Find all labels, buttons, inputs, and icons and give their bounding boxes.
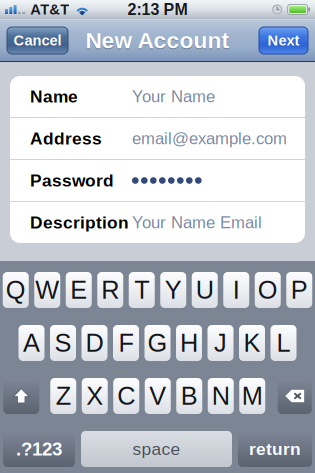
staticText: G — [147, 329, 167, 357]
staticText: Next — [267, 32, 299, 49]
staticText: D — [85, 329, 103, 357]
staticText: B — [181, 382, 198, 410]
button[interactable]: C — [113, 378, 139, 414]
staticText: N — [212, 382, 230, 410]
staticText: S — [54, 329, 71, 357]
button[interactable]: .?123 — [3, 431, 75, 467]
staticText: H — [180, 329, 198, 357]
button[interactable]: T — [129, 272, 155, 308]
staticText: W — [35, 276, 59, 304]
button[interactable]: G — [144, 325, 170, 361]
staticText: Cancel — [13, 32, 61, 49]
staticText: J — [214, 329, 227, 357]
button[interactable]: U — [192, 272, 218, 308]
staticText: Description — [30, 213, 129, 232]
staticText: email@example.com — [132, 129, 287, 148]
button[interactable]: Delete — [278, 378, 312, 414]
button[interactable]: L — [270, 325, 296, 361]
button[interactable]: return — [238, 431, 312, 467]
staticText: return — [249, 439, 301, 459]
staticText: R — [101, 276, 119, 304]
staticText: I — [233, 276, 240, 304]
button[interactable]: V — [145, 378, 171, 414]
button[interactable]: M — [239, 378, 265, 414]
staticText: space — [132, 439, 180, 459]
staticText: Name — [30, 87, 78, 106]
button[interactable]: X — [82, 378, 108, 414]
staticText: V — [149, 382, 166, 410]
staticText: P — [291, 276, 308, 304]
staticText: X — [86, 382, 103, 410]
staticText: Z — [56, 382, 71, 410]
button[interactable]: Q — [3, 272, 29, 308]
staticText: A — [23, 329, 40, 357]
staticText: F — [118, 329, 133, 357]
button[interactable]: N — [208, 378, 234, 414]
button[interactable]: D — [81, 325, 107, 361]
button[interactable]: F — [113, 325, 139, 361]
button[interactable]: I — [223, 272, 249, 308]
button[interactable]: S — [50, 325, 76, 361]
staticText: T — [134, 276, 149, 304]
staticText: U — [196, 276, 214, 304]
staticText: K — [243, 329, 260, 357]
staticText: Y — [165, 276, 182, 304]
button[interactable]: R — [97, 272, 123, 308]
staticText: O — [258, 276, 278, 304]
staticText: Address — [30, 129, 102, 148]
staticText: New Account — [85, 28, 229, 53]
staticText: AT&T — [30, 1, 69, 18]
button[interactable]: Z — [50, 378, 76, 414]
button[interactable]: O — [255, 272, 281, 308]
staticText: M — [242, 382, 263, 410]
button[interactable]: Cancel — [7, 27, 68, 54]
staticText: New Account — [85, 29, 229, 54]
staticText: Password — [30, 171, 114, 190]
staticText: L — [276, 329, 290, 357]
staticText: Your Name — [132, 87, 215, 106]
staticText: 2:13 PM — [127, 1, 187, 18]
button[interactable]: B — [176, 378, 202, 414]
button[interactable]: Y — [160, 272, 186, 308]
button[interactable]: Next — [259, 27, 308, 54]
staticText: Your Name Email — [132, 213, 262, 232]
staticText: Q — [6, 276, 26, 304]
staticText: .?123 — [16, 439, 62, 459]
button[interactable]: W — [34, 272, 60, 308]
button[interactable]: A — [18, 325, 44, 361]
staticText: E — [70, 276, 87, 304]
button[interactable]: E — [66, 272, 92, 308]
button[interactable]: J — [207, 325, 233, 361]
button[interactable]: K — [239, 325, 265, 361]
staticText: C — [117, 382, 135, 410]
button[interactable]: H — [176, 325, 202, 361]
button[interactable]: space — [81, 431, 232, 467]
button[interactable]: P — [286, 272, 312, 308]
button[interactable]: Shift — [3, 378, 39, 414]
